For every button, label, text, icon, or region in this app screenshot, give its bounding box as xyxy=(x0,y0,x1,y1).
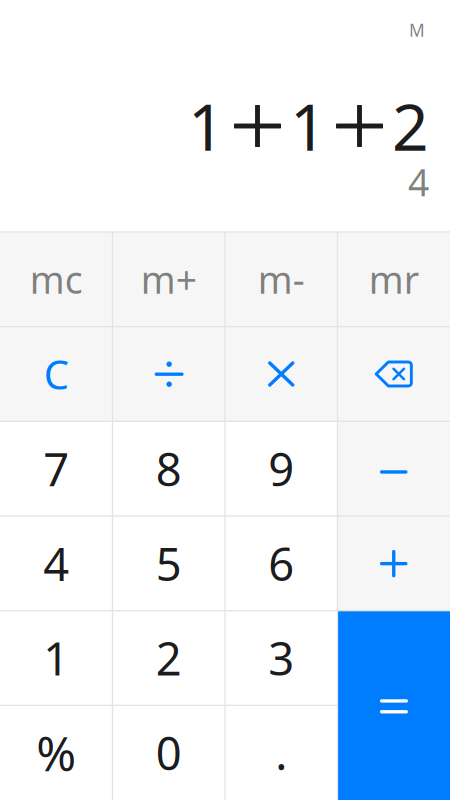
staticText: 0 xyxy=(156,723,182,783)
staticText: % xyxy=(36,721,76,784)
button[interactable]: 5 xyxy=(112,516,225,611)
button[interactable]: 9 xyxy=(225,421,337,516)
button[interactable]: Divide xyxy=(112,327,225,421)
staticText: 4 xyxy=(43,533,69,593)
staticText: C xyxy=(44,347,69,400)
staticText: 1 xyxy=(188,83,225,168)
staticText: 9 xyxy=(268,439,294,499)
staticText: 5 xyxy=(156,533,182,593)
staticText: . xyxy=(275,723,287,783)
staticText: m+ xyxy=(141,254,197,304)
button[interactable]: Memory indicator xyxy=(385,23,425,49)
button[interactable]: 7 xyxy=(0,421,112,516)
staticText: 6 xyxy=(268,533,294,593)
button[interactable]: Multiply xyxy=(225,327,337,421)
staticText: 1 xyxy=(43,628,69,688)
staticText: 7 xyxy=(43,439,69,499)
button[interactable]: Memory recall xyxy=(337,232,450,327)
button[interactable]: Memory add xyxy=(112,232,225,327)
button[interactable]: Percent xyxy=(0,705,112,800)
staticText: 2 xyxy=(156,628,182,688)
button[interactable]: Decimal point xyxy=(225,705,337,800)
staticText: 4 xyxy=(408,157,429,207)
button[interactable]: 4 xyxy=(0,516,112,611)
button[interactable]: Equals xyxy=(337,611,450,800)
button[interactable]: Clear xyxy=(0,327,112,421)
staticText: 3 xyxy=(268,628,294,688)
staticText: 1 xyxy=(290,83,327,168)
button[interactable]: 6 xyxy=(225,516,337,611)
button[interactable]: 3 xyxy=(225,611,337,705)
staticText: 8 xyxy=(156,439,182,499)
staticText: mr xyxy=(369,254,419,304)
staticText: M xyxy=(409,18,425,41)
button[interactable]: 8 xyxy=(112,421,225,516)
button[interactable]: Plus xyxy=(337,516,450,611)
button[interactable]: Memory subtract xyxy=(225,232,337,327)
staticText: 2 xyxy=(392,83,429,168)
staticText: mc xyxy=(30,254,83,304)
button[interactable]: 1 xyxy=(0,611,112,705)
button[interactable]: Backspace xyxy=(337,327,450,421)
button[interactable]: 0 xyxy=(112,705,225,800)
button[interactable]: 2 xyxy=(112,611,225,705)
button[interactable]: Memory clear xyxy=(0,232,112,327)
staticText: m- xyxy=(258,254,305,304)
button[interactable]: Minus xyxy=(337,421,450,516)
